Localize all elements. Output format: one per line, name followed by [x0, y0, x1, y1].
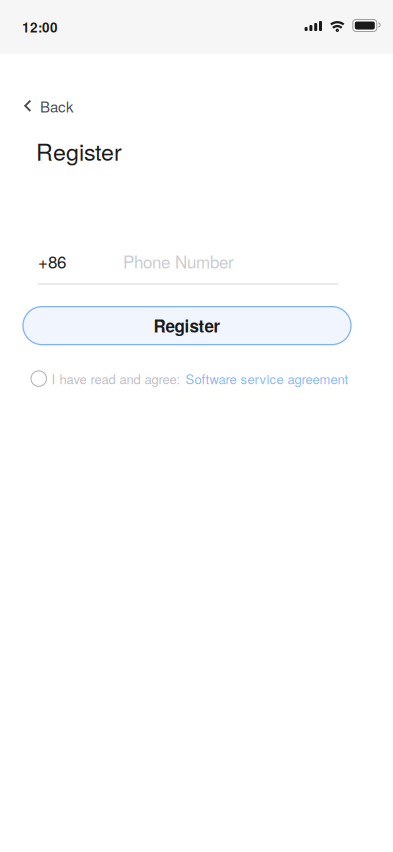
- staticText: I have read and agree:: [51, 369, 180, 388]
- button[interactable]: Software service agreement: [185, 369, 348, 388]
- staticText: Software service agreement: [185, 369, 348, 388]
- staticText: Back: [40, 95, 74, 117]
- button[interactable]: Register: [23, 307, 351, 345]
- staticText: 12:00: [22, 17, 58, 37]
- staticText: +86: [38, 249, 66, 273]
- button[interactable]: Back: [0, 87, 393, 125]
- staticText: Phone Number: [123, 249, 234, 273]
- staticText: Register: [36, 134, 122, 167]
- staticText: Register: [153, 313, 220, 338]
- button[interactable]: Accept the software service agreement: [31, 371, 46, 386]
